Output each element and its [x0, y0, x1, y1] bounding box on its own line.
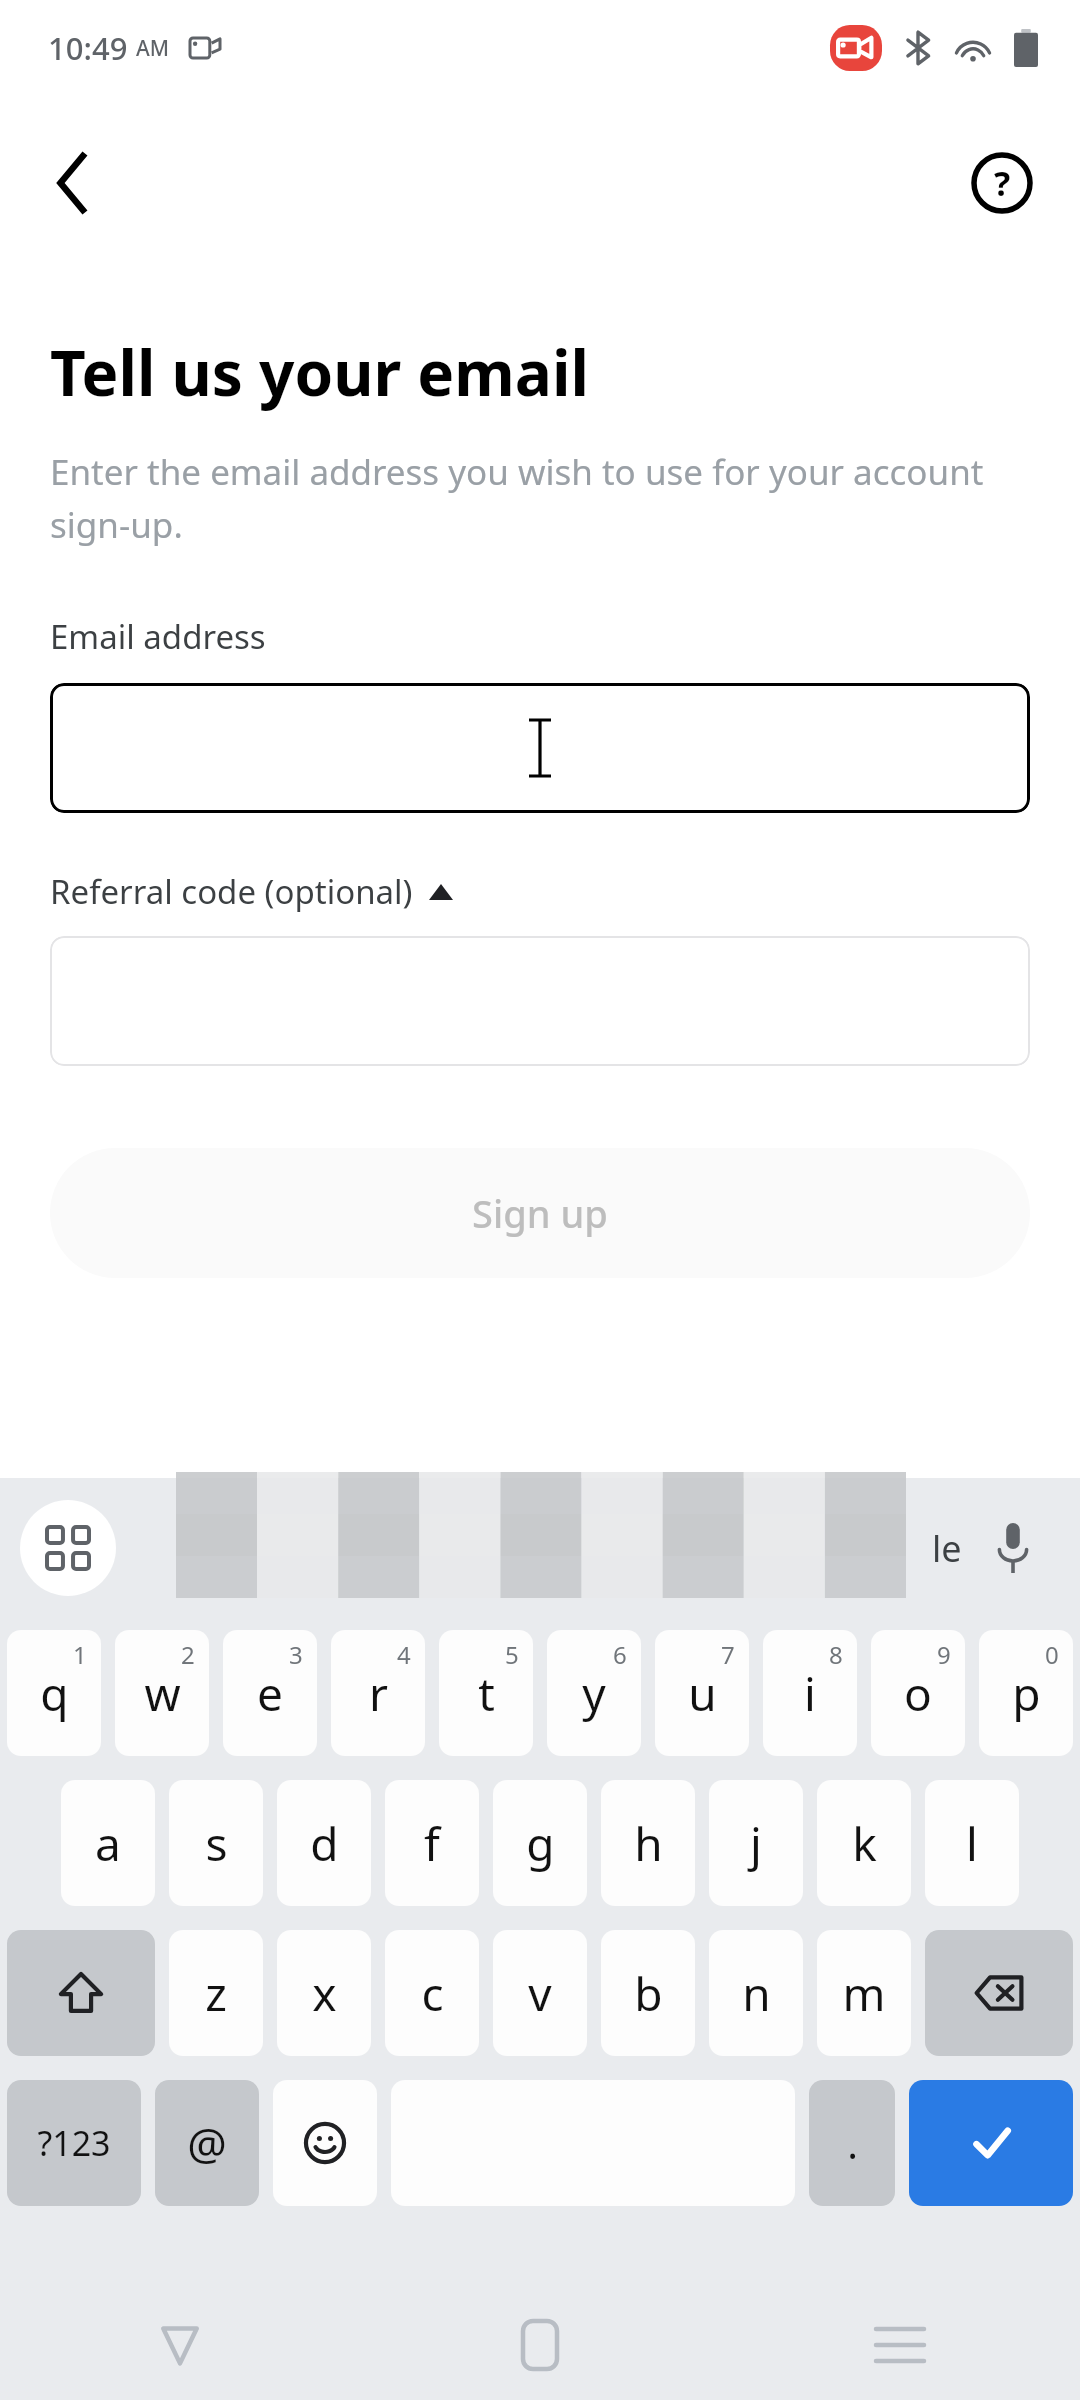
staticText: Referral code (optional) [50, 869, 413, 914]
staticText: f [424, 1812, 440, 1875]
staticText: l [966, 1812, 978, 1875]
button[interactable]: x [277, 1930, 371, 2056]
button[interactable]: Help [956, 137, 1048, 229]
staticText: a [95, 1812, 121, 1875]
staticText: n [742, 1962, 771, 2025]
button[interactable]: p [979, 1630, 1073, 1756]
button[interactable]: More options [20, 1500, 116, 1596]
staticText: Email address [50, 614, 266, 659]
staticText: h [634, 1812, 663, 1875]
button[interactable]: v [493, 1930, 587, 2056]
staticText: p [1012, 1662, 1041, 1725]
staticText: o [904, 1662, 932, 1725]
button[interactable]: w [115, 1630, 209, 1756]
button[interactable]: Voice input [968, 1503, 1058, 1593]
staticText: . [847, 2116, 858, 2170]
staticText: q [40, 1662, 69, 1725]
button[interactable]: Home [360, 2290, 720, 2400]
staticText: Sign up [472, 1187, 608, 1239]
staticText: ?123 [37, 2120, 111, 2166]
button[interactable] [50, 683, 1030, 813]
button[interactable]: b [601, 1930, 695, 2056]
staticText: 9 [937, 1638, 951, 1671]
button[interactable]: Referral code (optional) [50, 869, 453, 914]
button[interactable]: n [709, 1930, 803, 2056]
staticText: 10:49 [48, 27, 128, 69]
button[interactable] [50, 936, 1030, 1066]
staticText: z [205, 1962, 227, 2025]
staticText: ? [994, 160, 1011, 206]
button[interactable]: a [61, 1780, 155, 1906]
button[interactable]: z [169, 1930, 263, 2056]
button[interactable]: e [223, 1630, 317, 1756]
button[interactable]: r [331, 1630, 425, 1756]
staticText: AM [136, 34, 170, 63]
staticText: Enter the email address you wish to use … [50, 448, 1030, 548]
button[interactable]: Backspace [925, 1930, 1073, 2056]
button[interactable]: k [817, 1780, 911, 1906]
staticText: w [144, 1662, 181, 1725]
button[interactable]: o [871, 1630, 965, 1756]
staticText: Tell us your email [50, 330, 589, 414]
staticText: b [634, 1962, 663, 2025]
button[interactable]: u [655, 1630, 749, 1756]
staticText: 7 [721, 1638, 735, 1671]
staticText: 1 [73, 1638, 87, 1671]
button[interactable]: Back [0, 2290, 360, 2400]
button[interactable]: c [385, 1930, 479, 2056]
button[interactable]: Emoji [273, 2080, 377, 2206]
button[interactable]: Shift [7, 1930, 155, 2056]
staticText: d [310, 1812, 339, 1875]
staticText: r [369, 1662, 388, 1725]
button[interactable]: t [439, 1630, 533, 1756]
staticText: 2 [181, 1638, 195, 1671]
staticText: y [582, 1662, 606, 1725]
staticText: 6 [613, 1638, 627, 1671]
staticText: j [750, 1812, 762, 1875]
button[interactable]: j [709, 1780, 803, 1906]
button[interactable]: @ [155, 2080, 259, 2206]
staticText: 8 [829, 1638, 843, 1671]
button[interactable]: ?123 [7, 2080, 141, 2206]
button[interactable]: Recent apps [720, 2290, 1080, 2400]
staticText: x [312, 1962, 337, 2025]
staticText: k [852, 1812, 877, 1875]
button[interactable]: q [7, 1630, 101, 1756]
staticText: t [478, 1662, 495, 1725]
staticText: s [205, 1812, 228, 1875]
staticText: 4 [397, 1638, 411, 1671]
staticText: 0 [1045, 1638, 1059, 1671]
staticText: e [257, 1662, 283, 1725]
staticText: le [932, 1524, 962, 1573]
button[interactable]: g [493, 1780, 587, 1906]
staticText: u [688, 1662, 717, 1725]
button[interactable]: l [925, 1780, 1019, 1906]
button[interactable]: h [601, 1780, 695, 1906]
button[interactable]: i [763, 1630, 857, 1756]
staticText: @ [187, 2113, 227, 2173]
staticText: 3 [289, 1638, 303, 1671]
button[interactable]: f [385, 1780, 479, 1906]
button[interactable]: s [169, 1780, 263, 1906]
button[interactable]: d [277, 1780, 371, 1906]
button[interactable]: y [547, 1630, 641, 1756]
button[interactable]: . [809, 2080, 895, 2206]
staticText: 5 [505, 1638, 519, 1671]
button[interactable]: Sign up [50, 1148, 1030, 1278]
staticText: g [526, 1812, 555, 1875]
staticText: m [842, 1962, 886, 2025]
staticText: i [804, 1662, 816, 1725]
button[interactable]: Enter [909, 2080, 1073, 2206]
staticText: c [421, 1962, 444, 2025]
button[interactable]: Back [26, 137, 118, 229]
staticText: v [528, 1962, 552, 2025]
button[interactable]: m [817, 1930, 911, 2056]
